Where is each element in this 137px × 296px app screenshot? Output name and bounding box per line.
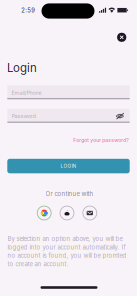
staticText: Forgot your password?: [73, 137, 129, 143]
staticText: LOGIN: [60, 163, 76, 169]
button[interactable]: Continue with Email: [81, 205, 98, 221]
button[interactable]: Continue with Apple: [59, 205, 75, 221]
staticText: By selection an option above, you will b…: [8, 235, 127, 268]
staticText: Login: [7, 61, 37, 75]
button[interactable]: Forgot your password?: [73, 137, 129, 144]
staticText: 2:59: [21, 7, 35, 14]
button[interactable]: Show password: [113, 110, 127, 122]
button[interactable]: Close: [114, 30, 129, 45]
staticText: Password: [12, 113, 36, 119]
button[interactable]: LOGIN: [7, 159, 130, 173]
staticText: Email/Phone: [12, 89, 42, 96]
button[interactable]: Continue with Google: [36, 205, 52, 221]
staticText: Or continue with: [46, 190, 94, 197]
